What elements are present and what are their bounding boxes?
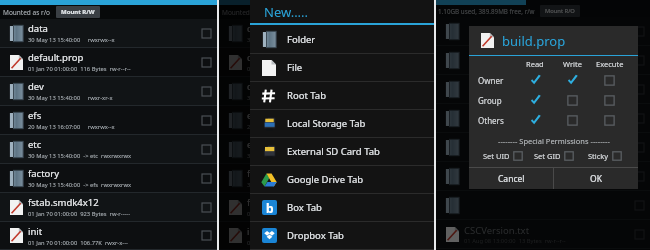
button[interactable]: Mount R/O (540, 5, 580, 17)
button[interactable]: OK (554, 168, 638, 189)
button[interactable]: Group write (567, 95, 578, 106)
staticText: 30 May 13 15:40:00 -> efs rwxrwxrwx (28, 181, 132, 189)
button[interactable]: Google Drive Tab (250, 166, 434, 194)
button[interactable]: Owner write (567, 75, 578, 86)
staticText: 30 May 13 15:40:00 rwxr-xr-x (247, 94, 332, 102)
button[interactable]: Select data (202, 29, 211, 38)
button[interactable]: dev (219, 77, 434, 106)
staticText: etc (28, 138, 42, 151)
button[interactable]: Select efs (202, 116, 211, 125)
button[interactable]: Select factory (202, 174, 211, 183)
staticText: Mount R/O (545, 7, 575, 15)
staticText: 30 May 13 15:40:00 -> etc rwxrwxrwx (28, 152, 132, 160)
button[interactable]: default.prop (219, 48, 434, 77)
button[interactable]: Cancel (469, 168, 553, 189)
staticText: 01 Jan 70 01:00:00 116 Bytes rw-r--r-- (28, 65, 131, 73)
staticText: data (28, 22, 48, 35)
button[interactable]: fstab.smdk4x12 (0, 193, 217, 222)
staticText: 1.10GB used, 389.89MB free, r/w (438, 7, 535, 16)
staticText: dev (247, 80, 263, 93)
staticText: Local Storage Tab (287, 117, 366, 130)
button[interactable]: Sticky (579, 151, 630, 161)
button[interactable]: Owner read (530, 75, 541, 86)
button[interactable]: Owner execute (604, 75, 615, 86)
staticText: File (287, 61, 303, 74)
staticText: Mount R/W (280, 8, 314, 16)
button[interactable]: Mount R/W (275, 6, 319, 18)
button[interactable]: etc (0, 135, 217, 164)
button[interactable]: etc (219, 135, 434, 164)
staticText: Mounted as r/o (222, 8, 270, 17)
staticText: b (266, 200, 274, 215)
button[interactable]: default.prop (0, 48, 217, 77)
button[interactable]: b (250, 194, 434, 222)
button[interactable]: Others execute (604, 115, 615, 126)
button[interactable]: Others write (567, 115, 578, 126)
staticText: -------- Special Permissions -------- (498, 136, 610, 146)
staticText: 01 Jan 70 01:00:00 106.77K rwxr-x--- (247, 239, 347, 247)
button[interactable]: fstab.smdk4x12 (219, 193, 434, 222)
staticText: Write (563, 59, 582, 69)
staticText: 30 May 13 15:40:00 rwxr-xr-x (28, 94, 113, 102)
button[interactable]: Others read (530, 115, 541, 126)
staticText: Group (478, 95, 502, 106)
staticText: efs (28, 109, 42, 122)
staticText: Mounted as r/o (3, 8, 51, 17)
button[interactable]: Dropbox Tab (250, 222, 434, 250)
button[interactable]: Root Tab (250, 82, 434, 110)
button[interactable]: Select init (202, 231, 211, 240)
button[interactable]: Mount R/W (56, 6, 100, 18)
button[interactable]: efs (0, 106, 217, 135)
button[interactable]: Folder (250, 25, 434, 54)
staticText: Read (526, 59, 544, 69)
staticText: etc (247, 138, 261, 151)
staticText: Others (478, 115, 504, 126)
staticText: default.prop (28, 51, 84, 64)
staticText: 01 Jan 70 01:00:00 116 Bytes rw-r--r-- (247, 65, 350, 73)
staticText: OK (590, 173, 602, 185)
button[interactable]: factory (219, 164, 434, 193)
button[interactable]: Set GID (528, 151, 579, 161)
staticText: 01 Aug 08 13:00:00 13 Bytes rw-r--r-- (464, 237, 566, 245)
button[interactable]: Set UID (477, 151, 528, 161)
staticText: Set GID (534, 151, 561, 161)
button[interactable]: Select default.prop (202, 58, 211, 67)
button[interactable]: data (0, 19, 217, 48)
button[interactable]: Select etc (202, 145, 211, 154)
button[interactable]: init (219, 222, 434, 250)
button[interactable]: File (250, 54, 434, 82)
button[interactable]: init (0, 222, 217, 250)
button[interactable]: Select fstab.smdk4x12 (202, 203, 211, 212)
staticText: 30 May 13 15:40:00 rwxrwx--x (28, 36, 115, 44)
button[interactable]: factory (0, 164, 217, 193)
button[interactable]: data (219, 19, 434, 48)
staticText: init (247, 225, 262, 238)
staticText: Execute (596, 59, 624, 69)
staticText: Google Drive Tab (287, 173, 364, 186)
staticText: 30 May 13 15:40:00 -> efs rwxrwxrwx (247, 181, 351, 189)
staticText: 01 Jan 70 01:00:00 923 Bytes rw-r----- (28, 210, 131, 218)
staticText: fstab.smdk4x12 (247, 196, 318, 209)
button[interactable]: Local Storage Tab (250, 110, 434, 138)
staticText: factory (28, 167, 60, 180)
button[interactable]: Select dev (202, 87, 211, 96)
staticText: Folder (287, 33, 316, 46)
button[interactable]: Group read (530, 95, 541, 106)
staticText: External SD Card Tab (287, 145, 380, 158)
staticText: CSCVersion.txt (464, 224, 530, 237)
button[interactable]: dev (0, 77, 217, 106)
button[interactable]: External SD Card Tab (250, 138, 434, 166)
staticText: 30 May 13 15:40:00 rwxrwx--x (247, 36, 334, 44)
staticText: Root Tab (287, 89, 326, 102)
button[interactable]: efs (219, 106, 434, 135)
button[interactable]: Group execute (604, 95, 615, 106)
staticText: 01 Jan 70 01:00:00 923 Bytes rw-r----- (247, 210, 350, 218)
